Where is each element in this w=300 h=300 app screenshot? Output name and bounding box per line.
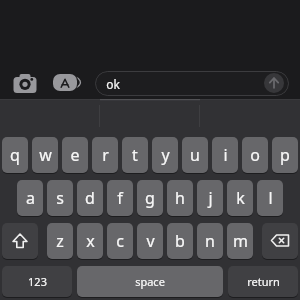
button[interactable]: v — [137, 223, 163, 259]
button[interactable]: f — [107, 180, 133, 216]
staticText: o — [250, 144, 260, 166]
staticText: y — [161, 144, 170, 166]
staticText: h — [175, 187, 185, 209]
staticText: q — [10, 144, 20, 166]
staticText: return — [247, 274, 280, 289]
button[interactable]: 123 — [2, 266, 72, 297]
button[interactable]: y — [152, 137, 178, 173]
staticText: a — [26, 187, 35, 209]
staticText: g — [145, 187, 155, 209]
staticText: s — [56, 187, 64, 209]
button[interactable]: x — [77, 223, 103, 259]
button[interactable]: c — [107, 223, 133, 259]
button[interactable]: g — [137, 180, 163, 216]
staticText: b — [175, 230, 185, 252]
staticText: t — [132, 144, 138, 166]
button[interactable]: l — [257, 180, 283, 216]
button[interactable]: space — [77, 266, 223, 297]
button[interactable]: b — [167, 223, 193, 259]
button[interactable] — [50, 71, 86, 95]
button[interactable]: z — [47, 223, 73, 259]
button[interactable]: i — [212, 137, 238, 173]
button[interactable] — [10, 72, 40, 98]
button[interactable] — [2, 223, 38, 259]
staticText: u — [190, 144, 200, 166]
staticText: ok — [106, 76, 120, 92]
staticText: j — [208, 187, 213, 209]
staticText: e — [70, 144, 80, 166]
button[interactable]: a — [17, 180, 43, 216]
staticText: p — [280, 144, 290, 166]
staticText: space — [135, 274, 165, 289]
button[interactable]: q — [2, 137, 28, 173]
button[interactable]: s — [47, 180, 73, 216]
button[interactable]: u — [182, 137, 208, 173]
staticText: d — [85, 187, 95, 209]
staticText: w — [39, 144, 52, 166]
button[interactable]: return — [228, 266, 298, 297]
staticText: n — [205, 230, 215, 252]
staticText: v — [146, 230, 155, 252]
button[interactable]: n — [197, 223, 223, 259]
button[interactable]: h — [167, 180, 193, 216]
staticText: i — [223, 144, 228, 166]
button[interactable] — [264, 73, 284, 93]
staticText: m — [233, 230, 248, 252]
staticText: k — [236, 187, 245, 209]
staticText: 123 — [28, 274, 47, 289]
button[interactable]: t — [122, 137, 148, 173]
button[interactable]: k — [227, 180, 253, 216]
staticText: z — [56, 230, 64, 252]
staticText: f — [117, 187, 123, 209]
button[interactable]: ok — [95, 71, 289, 96]
button[interactable]: o — [242, 137, 268, 173]
staticText: x — [86, 230, 95, 252]
button[interactable]: w — [32, 137, 58, 173]
staticText: c — [116, 230, 124, 252]
button[interactable]: j — [197, 180, 223, 216]
staticText: r — [102, 144, 109, 166]
button[interactable] — [262, 223, 298, 259]
staticText: l — [268, 187, 273, 209]
button[interactable]: e — [62, 137, 88, 173]
button[interactable]: p — [272, 137, 298, 173]
button[interactable]: m — [227, 223, 253, 259]
button[interactable]: d — [77, 180, 103, 216]
button[interactable]: r — [92, 137, 118, 173]
